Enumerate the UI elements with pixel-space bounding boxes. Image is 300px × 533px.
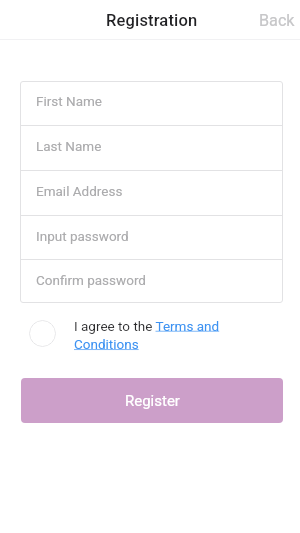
staticText: Confirm password xyxy=(36,272,146,288)
button[interactable]: Email Address xyxy=(20,171,283,215)
button[interactable]: Back xyxy=(247,4,300,35)
staticText: Back xyxy=(259,11,295,30)
staticText: Registration xyxy=(106,11,198,30)
button[interactable]: Input password xyxy=(20,216,283,259)
button[interactable]: I agree to the Terms and Conditions xyxy=(74,318,224,352)
button[interactable]: Register xyxy=(21,378,283,423)
button[interactable]: Confirm password xyxy=(20,260,283,303)
staticText: Input password xyxy=(36,228,129,244)
button[interactable]: I agree checkbox xyxy=(29,320,56,347)
staticText: Register xyxy=(125,392,180,410)
staticText: Email Address xyxy=(36,183,123,199)
staticText: First Name xyxy=(36,93,103,109)
button[interactable]: Last Name xyxy=(20,126,283,170)
button[interactable]: First Name xyxy=(20,81,283,125)
staticText: Last Name xyxy=(36,138,102,154)
